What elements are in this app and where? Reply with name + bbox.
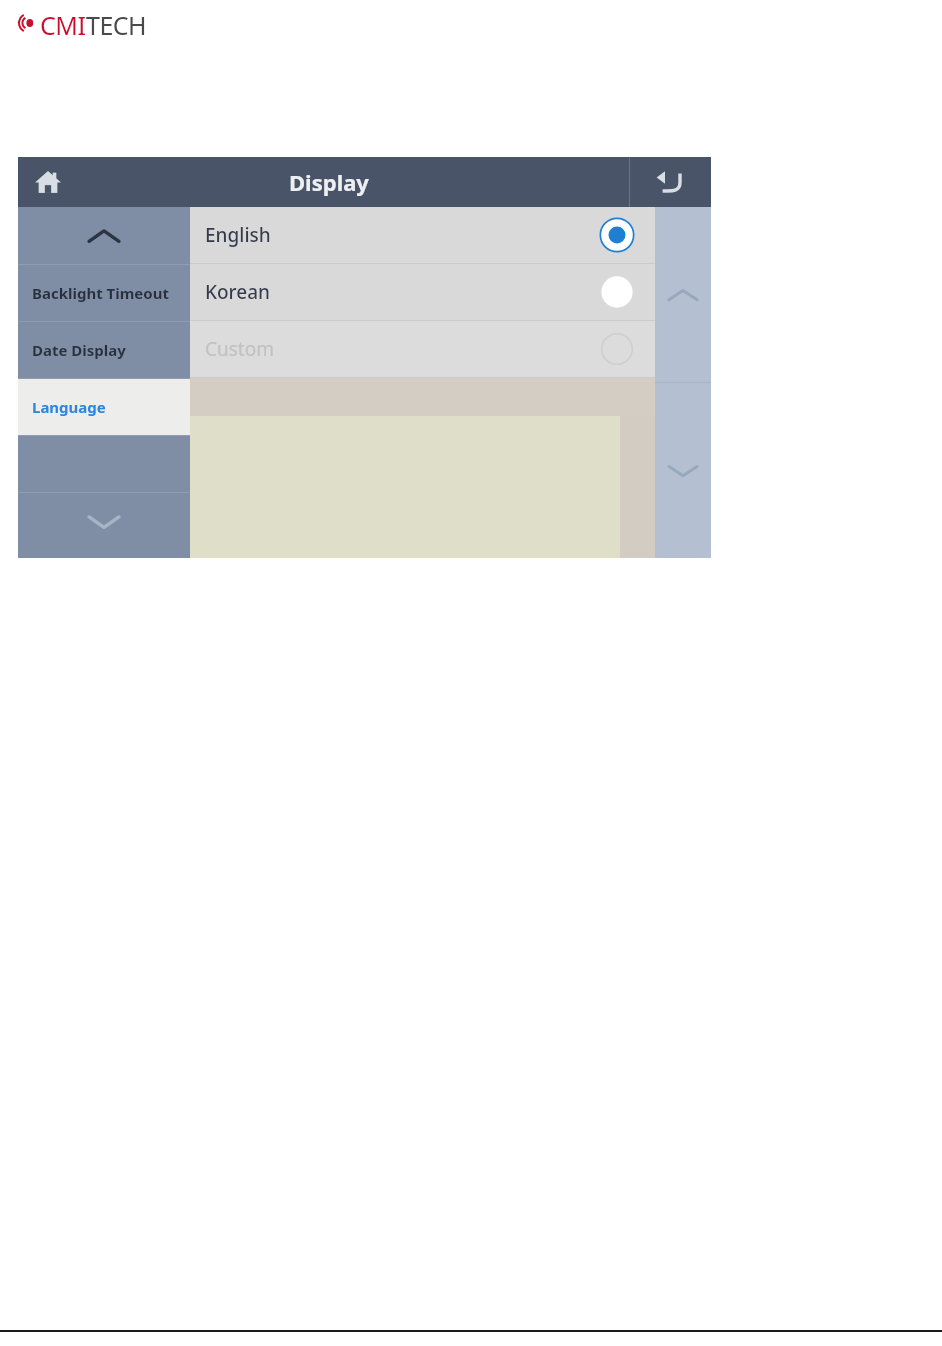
staticText: Display: [289, 167, 369, 197]
button[interactable]: Backlight Timeout: [18, 265, 190, 321]
button[interactable]: Korean: [190, 264, 655, 320]
staticText: Custom: [205, 336, 274, 362]
staticText: Backlight Timeout: [32, 283, 169, 303]
staticText: Date Display: [32, 340, 126, 360]
button[interactable]: Language: [18, 379, 190, 435]
staticText: Language: [32, 397, 106, 417]
button[interactable]: Date Display: [18, 322, 190, 378]
button[interactable]: Scroll up: [18, 207, 190, 264]
button[interactable]: Back: [630, 157, 711, 207]
button[interactable]: English: [190, 207, 655, 263]
button[interactable]: Scroll down: [18, 493, 190, 550]
staticText: Korean: [205, 279, 270, 305]
staticText: English: [205, 222, 271, 248]
staticText: TECH: [86, 8, 147, 38]
staticText: CMI: [40, 8, 86, 38]
button[interactable]: Home: [18, 157, 78, 207]
